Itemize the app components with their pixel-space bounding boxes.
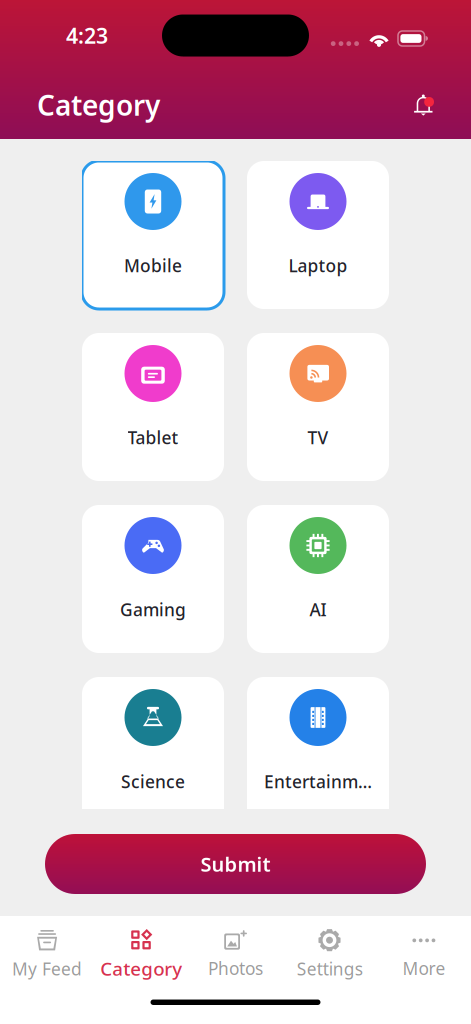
staticText: TV: [307, 426, 328, 449]
button[interactable]: Entertainm…: [247, 677, 389, 825]
staticText: Settings: [297, 957, 363, 980]
button[interactable]: Mobile: [82, 161, 224, 309]
button[interactable]: More: [377, 929, 471, 980]
staticText: Category: [100, 956, 182, 981]
staticText: Tablet: [127, 426, 178, 449]
button[interactable]: Laptop: [247, 161, 389, 309]
button[interactable]: Settings: [283, 928, 377, 980]
staticText: Science: [121, 770, 185, 793]
staticText: 4:23: [66, 21, 108, 50]
button[interactable]: Submit: [45, 834, 426, 894]
button[interactable]: Science: [82, 677, 224, 825]
button[interactable]: Photos: [188, 929, 283, 980]
button[interactable]: Notifications: [410, 92, 437, 118]
staticText: Photos: [208, 957, 263, 980]
staticText: AI: [309, 598, 326, 621]
staticText: Laptop: [288, 254, 347, 277]
staticText: More: [402, 957, 445, 980]
staticText: Category: [37, 86, 160, 124]
button[interactable]: Gaming: [82, 505, 224, 653]
staticText: My Feed: [12, 957, 82, 980]
button[interactable]: AI: [247, 505, 389, 653]
staticText: Mobile: [124, 254, 182, 277]
staticText: Gaming: [120, 598, 186, 621]
button[interactable]: Category: [94, 928, 188, 981]
button[interactable]: Tablet: [82, 333, 224, 481]
button[interactable]: My Feed: [0, 928, 94, 980]
staticText: Submit: [200, 851, 270, 877]
button[interactable]: TV: [247, 333, 389, 481]
staticText: Entertainm…: [264, 770, 372, 793]
